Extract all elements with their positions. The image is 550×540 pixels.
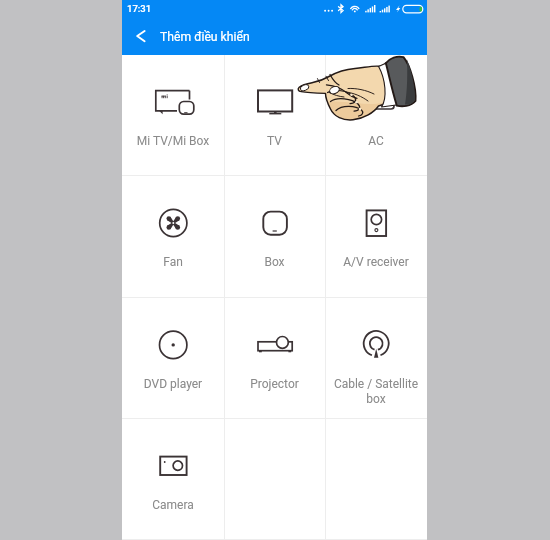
staticText: Thêm điều khiển: [160, 30, 250, 44]
button[interactable]: Cable / Satellite box: [325, 298, 427, 418]
staticText: 17:31: [127, 3, 152, 14]
staticText: Projector: [230, 377, 319, 391]
staticText: Mi TV/Mi Box: [128, 134, 218, 148]
button[interactable]: AC: [325, 55, 427, 175]
staticText: DVD player: [128, 377, 218, 391]
button[interactable]: DVD player: [122, 298, 224, 418]
staticText: Fan: [128, 255, 218, 269]
staticText: AC: [331, 134, 421, 148]
button[interactable]: Fan: [122, 176, 224, 297]
button[interactable]: Projector: [224, 298, 325, 418]
button[interactable]: TV: [224, 55, 325, 175]
staticText: Cable / Satellite box: [331, 377, 421, 406]
staticText: Camera: [128, 498, 218, 512]
staticText: Box: [230, 255, 319, 269]
button[interactable]: Box: [224, 176, 325, 297]
button[interactable]: A/V receiver: [325, 176, 427, 297]
button[interactable]: Back: [122, 19, 160, 52]
staticText: A/V receiver: [331, 255, 421, 269]
staticText: TV: [230, 134, 319, 148]
button[interactable]: Camera: [122, 419, 224, 539]
button[interactable]: Mi TV/Mi Box: [122, 55, 224, 175]
